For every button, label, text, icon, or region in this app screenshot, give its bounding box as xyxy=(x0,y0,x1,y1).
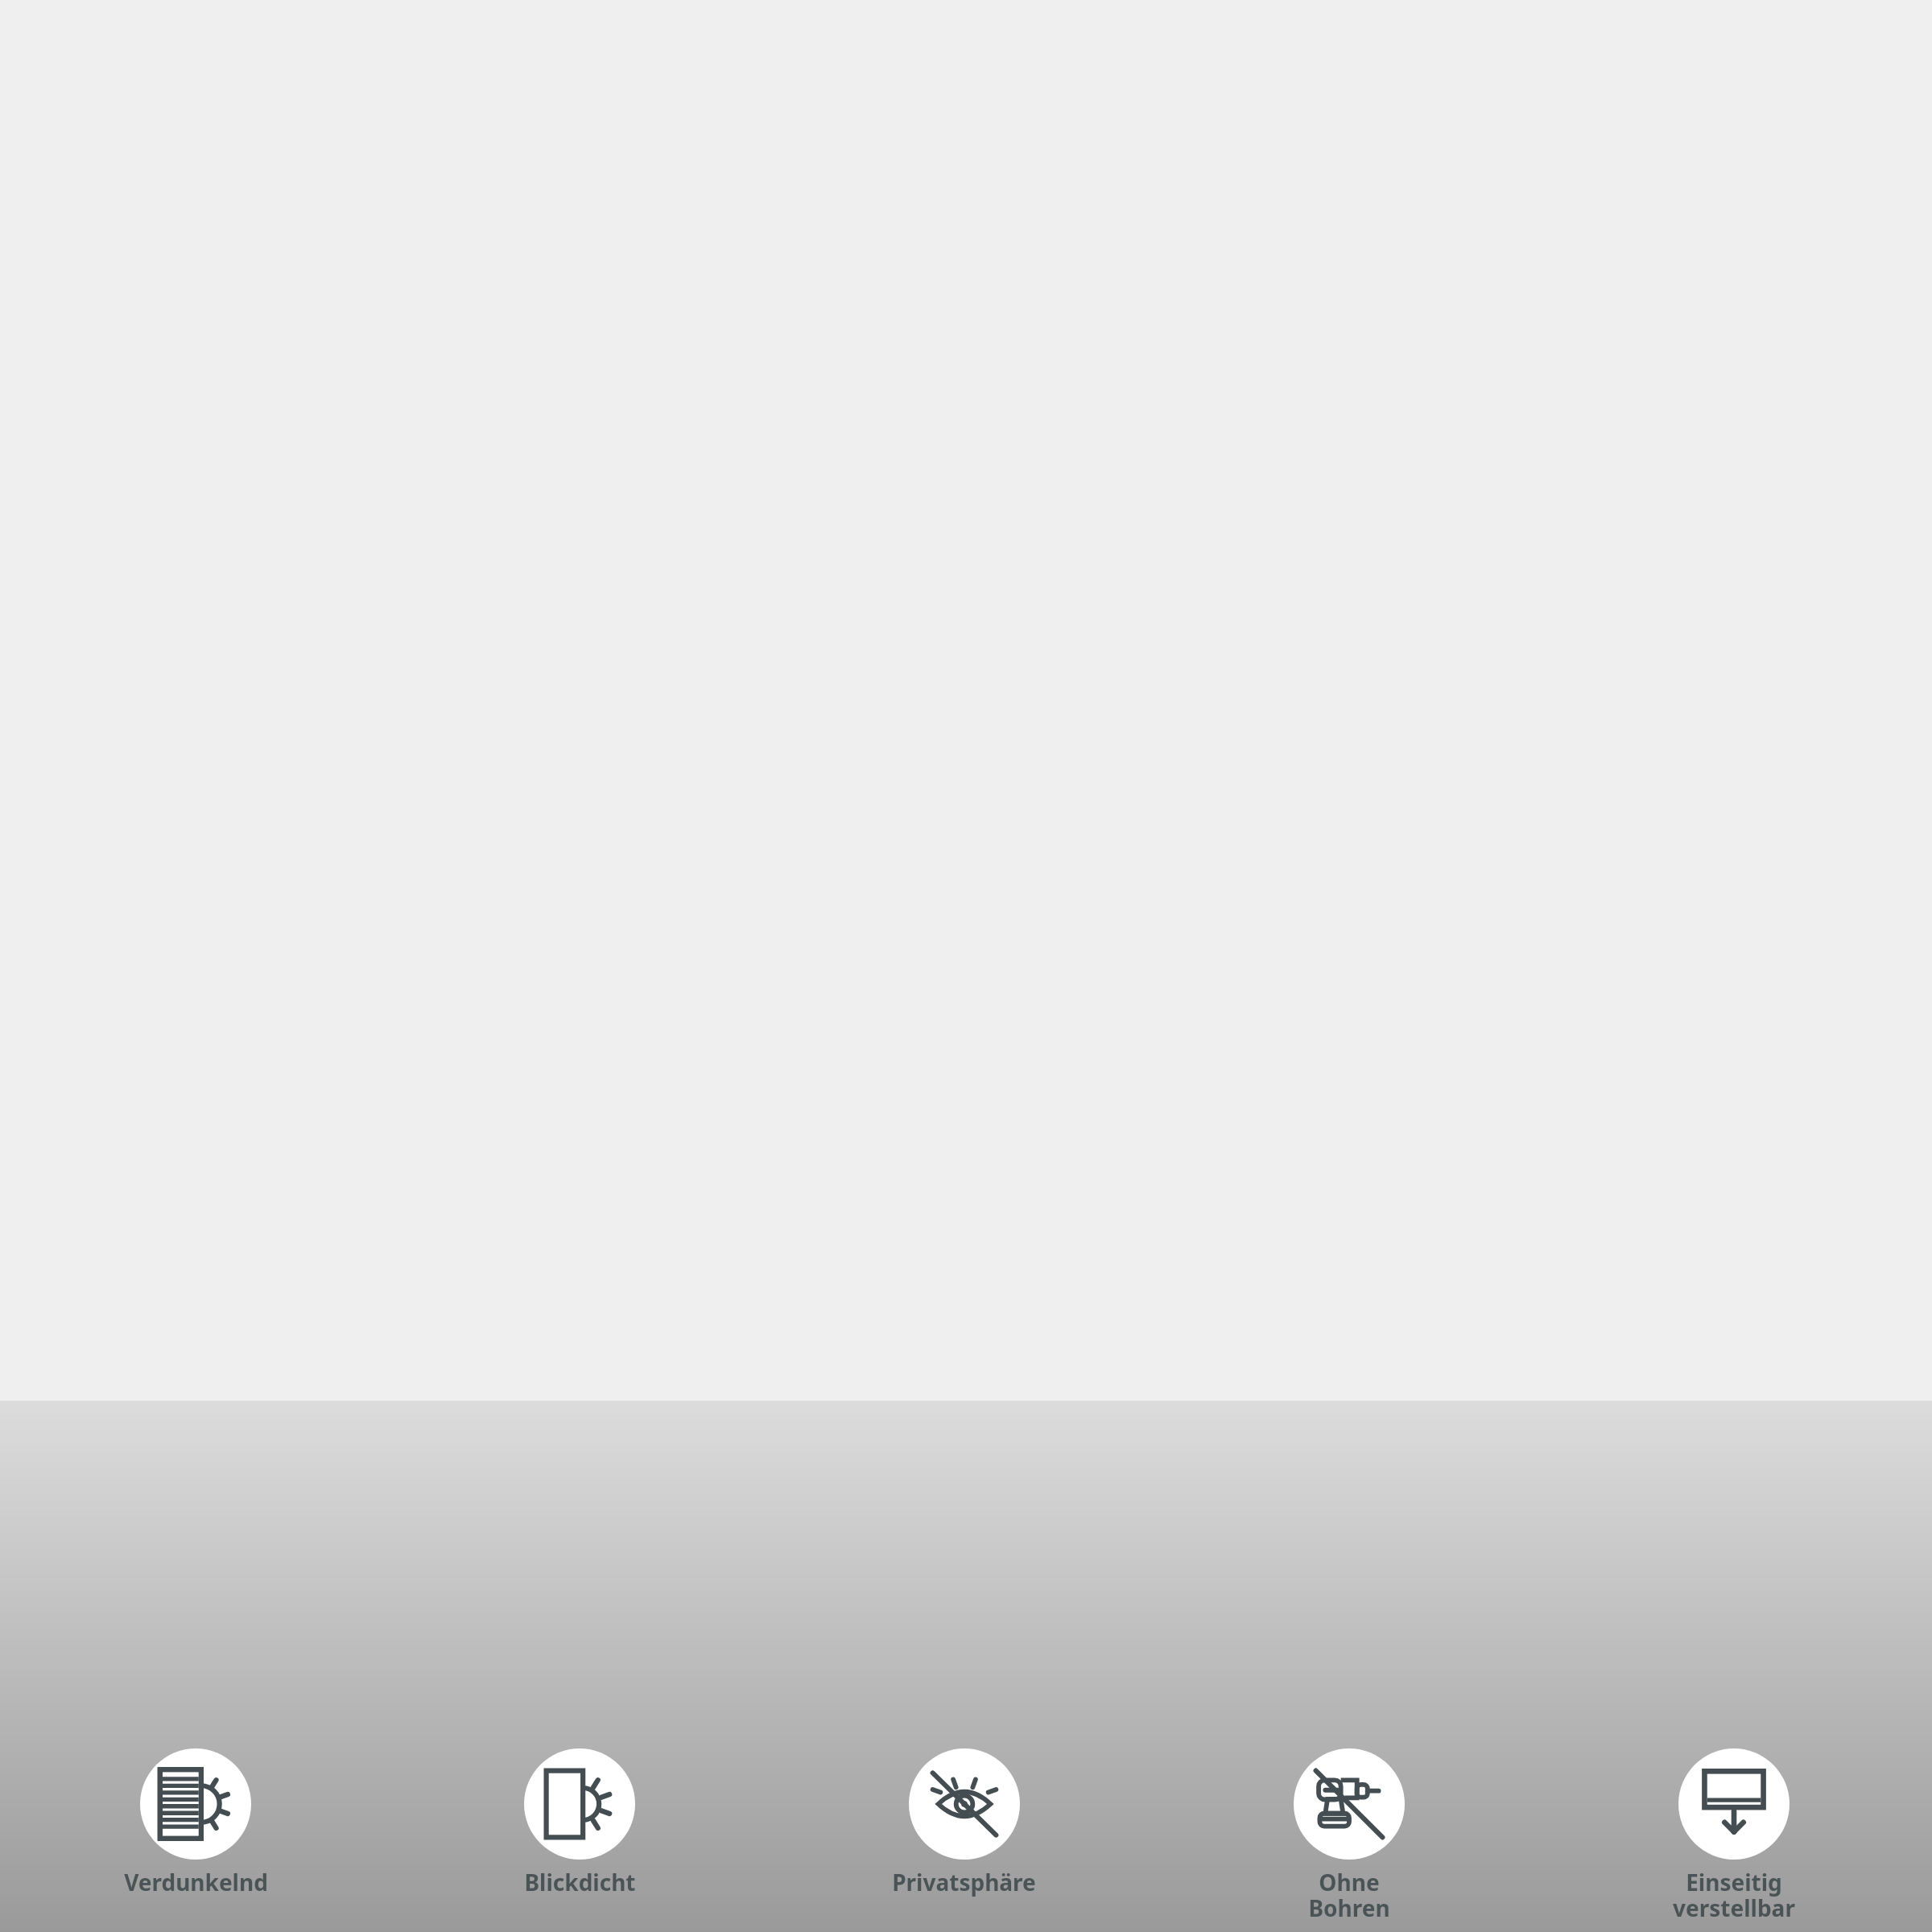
staticText: Blickdicht xyxy=(524,1867,636,1897)
staticText: Privatsphäre xyxy=(892,1867,1036,1897)
button[interactable]: Einseitig verstellbar xyxy=(1549,1748,1918,1923)
button[interactable]: Verdunkelnd xyxy=(11,1748,380,1897)
staticText: Einseitig verstellbar xyxy=(1673,1867,1795,1923)
staticText: Verdunkelnd xyxy=(124,1867,268,1897)
button[interactable]: Privatsphäre xyxy=(779,1748,1149,1897)
button[interactable]: Blickdicht xyxy=(395,1748,764,1897)
button[interactable]: Ohne Bohren xyxy=(1164,1748,1534,1923)
staticText: Ohne Bohren xyxy=(1308,1867,1390,1923)
